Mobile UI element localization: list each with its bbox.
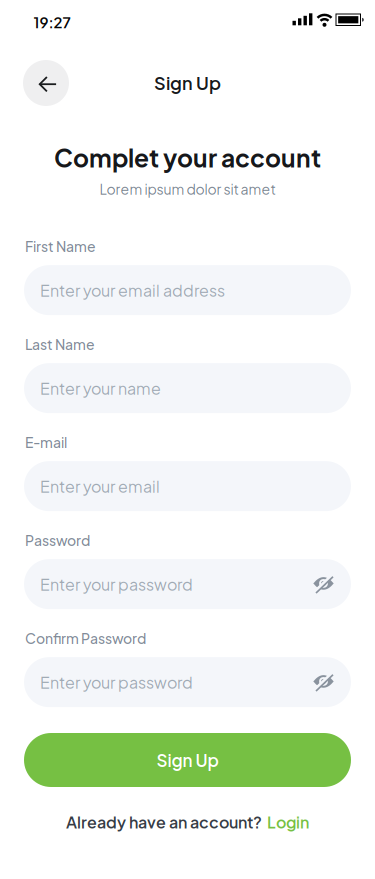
button[interactable] [23, 60, 69, 106]
staticText: Password [25, 531, 90, 549]
button[interactable]: Enter your password [24, 559, 351, 609]
staticText: E-mail [25, 433, 67, 451]
staticText: Enter your email address [40, 280, 225, 300]
button[interactable]: Login [267, 812, 309, 832]
staticText: 19:27 [33, 13, 70, 31]
button[interactable]: Sign Up [24, 733, 351, 787]
staticText: Confirm Password [25, 629, 146, 647]
staticText: Last Name [25, 335, 95, 353]
staticText: Lorem ipsum dolor sit amet [99, 180, 275, 198]
button[interactable]: Enter your email [24, 461, 351, 511]
button[interactable]: Enter your email address [24, 265, 351, 315]
button[interactable]: Enter your password [24, 657, 351, 707]
staticText: Sign Up [156, 749, 218, 771]
button[interactable]: Enter your name [24, 363, 351, 413]
staticText: First Name [25, 237, 96, 255]
staticText: Enter your password [40, 574, 193, 594]
staticText: Enter your email [40, 476, 160, 496]
staticText: Already have an account? [66, 812, 262, 832]
staticText: Enter your password [40, 672, 193, 692]
staticText: Complet your account [54, 142, 321, 173]
staticText: Enter your name [40, 378, 161, 398]
staticText: Sign Up [154, 71, 221, 94]
staticText: Login [267, 812, 309, 832]
